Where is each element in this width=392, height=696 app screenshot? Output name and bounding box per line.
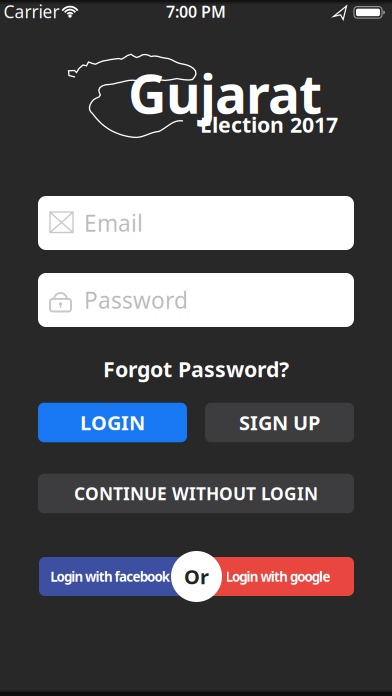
textField[interactable]: Password	[38, 285, 354, 315]
button[interactable]: CONTINUE WITHOUT LOGIN	[38, 474, 354, 513]
staticText: Login with google	[226, 568, 330, 585]
button[interactable]: LOGIN	[38, 403, 187, 442]
staticText: Login with facebook	[50, 568, 170, 585]
staticText: Password	[38, 285, 142, 315]
staticText: Forgot Password?	[103, 355, 289, 383]
staticText: Email	[84, 208, 143, 238]
staticText: Email	[38, 208, 97, 238]
staticText: Election 2017	[200, 110, 338, 139]
button[interactable]: Login with facebook	[39, 557, 197, 596]
staticText: Password	[84, 285, 188, 315]
button[interactable]: SIGN UP	[205, 403, 354, 442]
staticText: SIGN UP	[239, 409, 320, 436]
staticText: LOGIN	[80, 409, 145, 436]
staticText: 7:00 PM	[166, 1, 226, 22]
staticText: Carrier	[3, 0, 59, 23]
staticText: Gujarat	[128, 58, 322, 128]
staticText: CONTINUE WITHOUT LOGIN	[74, 482, 318, 505]
staticText: Or	[184, 563, 209, 590]
button[interactable]: Forgot Password?	[103, 355, 289, 383]
textField[interactable]: Email	[38, 208, 354, 238]
button[interactable]: Login with google	[196, 557, 354, 596]
